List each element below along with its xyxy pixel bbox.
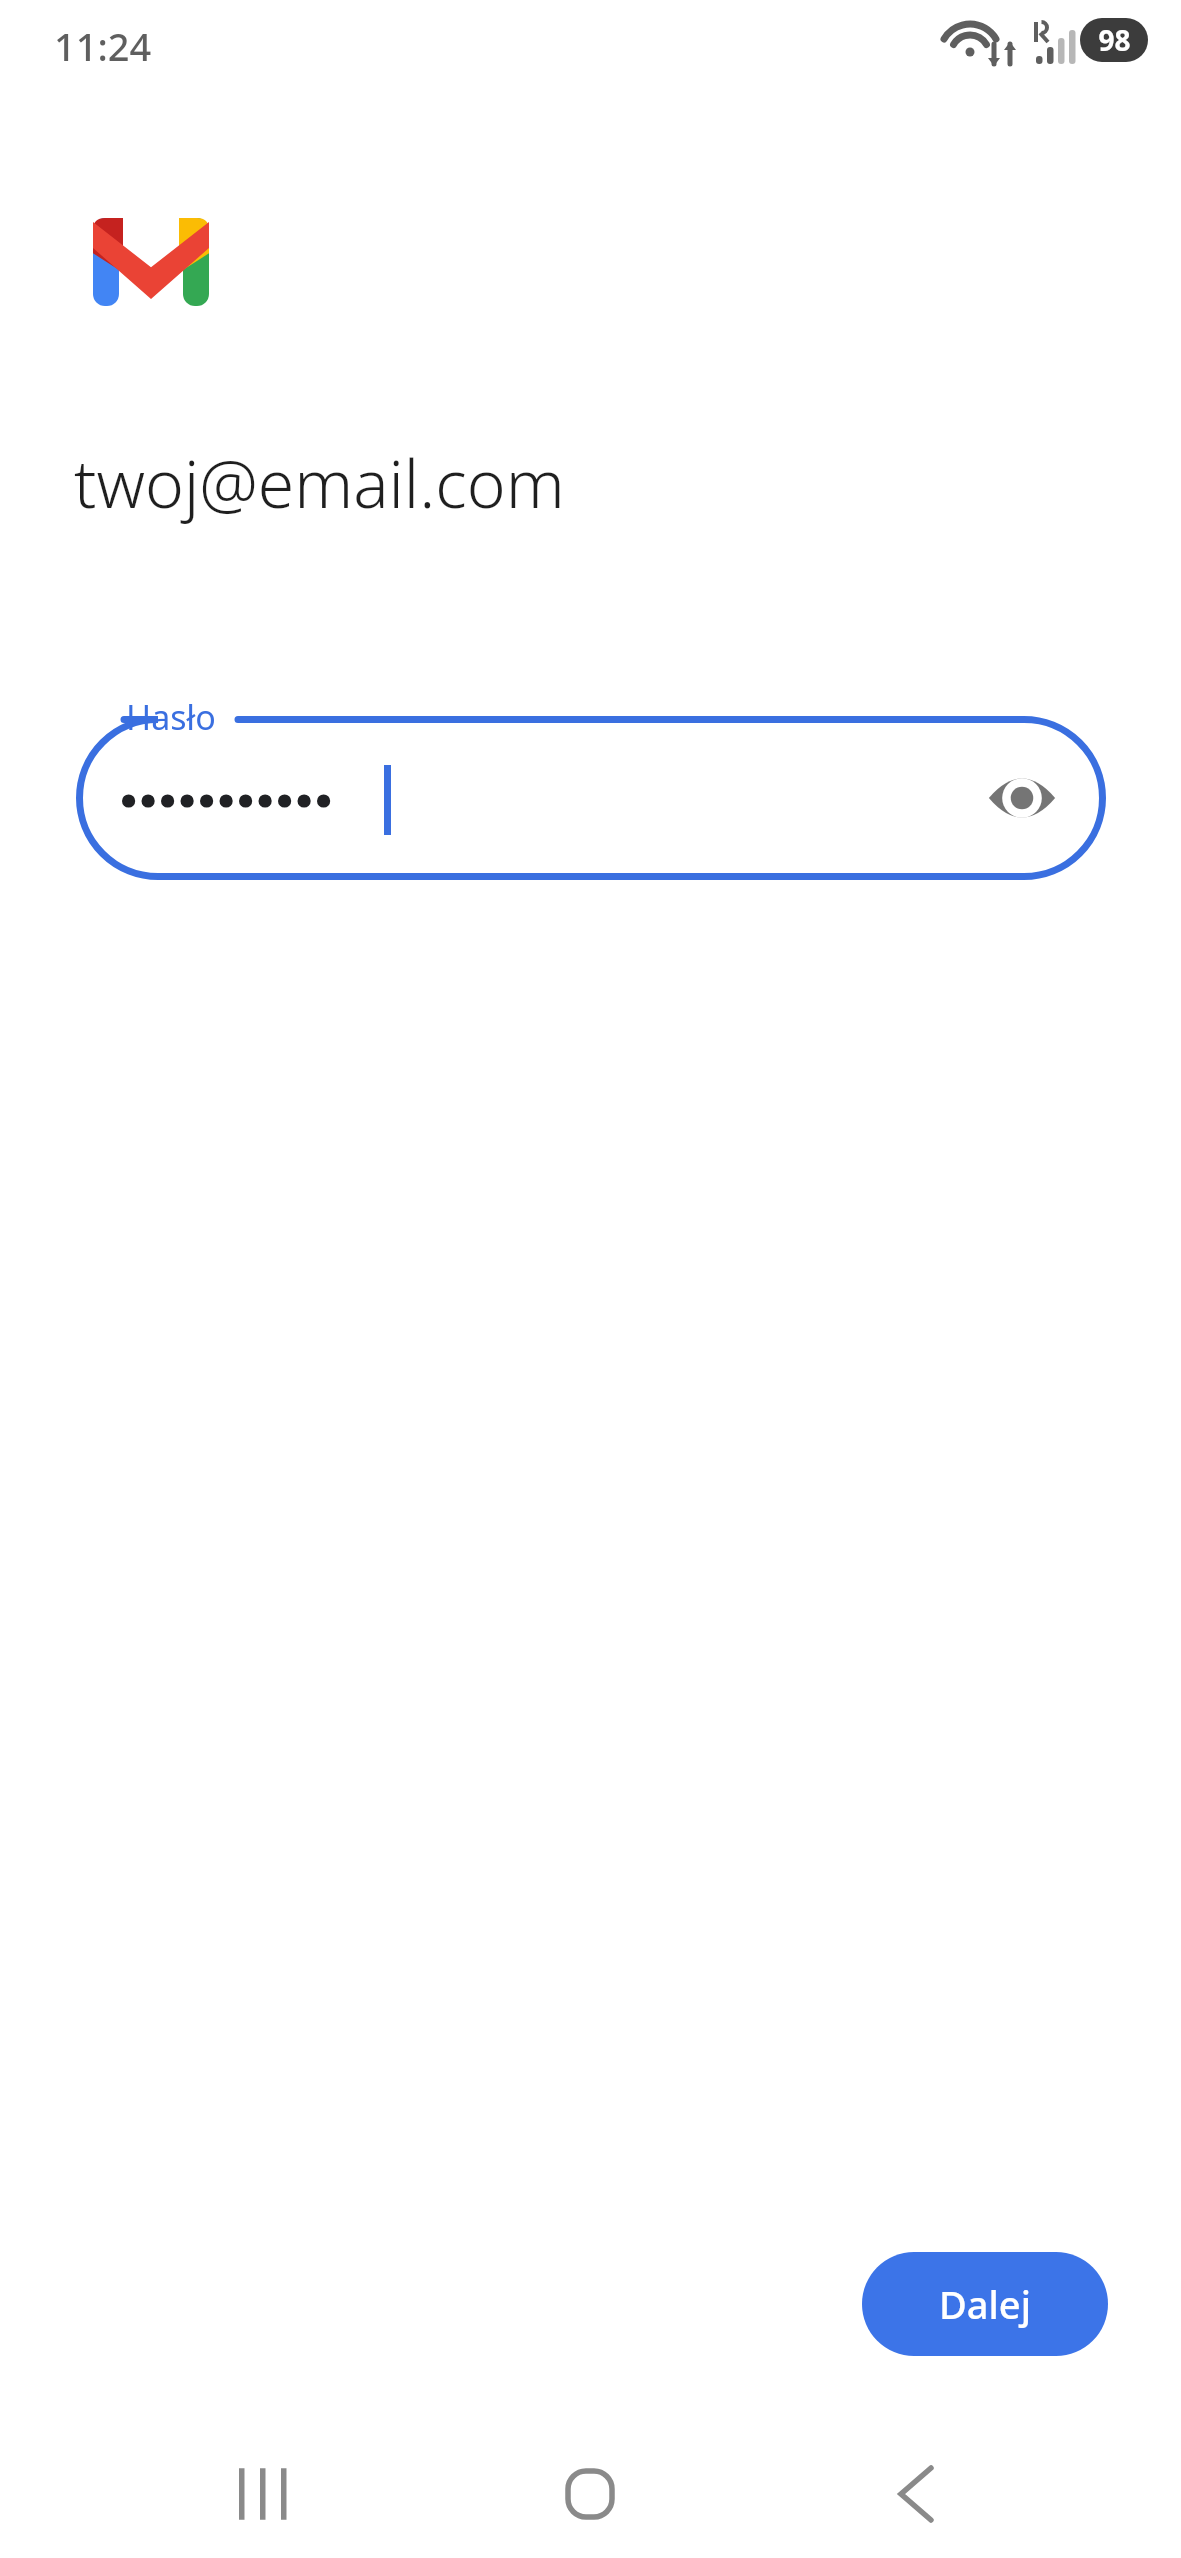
staticText: twoj@email.com [74,437,565,527]
button[interactable]: Show password [76,716,1106,880]
button[interactable]: Show password [982,758,1062,838]
button[interactable]: Recents [200,2430,328,2558]
button[interactable]: Home [526,2430,654,2558]
staticText: 11:24 [54,20,152,72]
button[interactable]: Dalej [862,2252,1108,2356]
staticText: Dalej [939,2278,1031,2330]
staticText: 98 [1098,21,1131,59]
button[interactable]: Back [852,2430,980,2558]
staticText: Hasło [126,694,216,740]
